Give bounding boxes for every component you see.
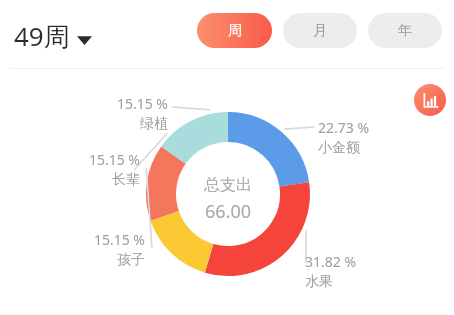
staticText: 绿植 <box>78 115 168 133</box>
staticText: 孩子 <box>55 251 145 269</box>
staticText: 水果 <box>305 273 415 291</box>
button[interactable]: 年 <box>368 13 442 48</box>
staticText: 小金额 <box>318 139 428 157</box>
button[interactable]: 周 <box>197 13 272 48</box>
staticText: 月 <box>313 22 327 40</box>
staticText: 年 <box>398 22 412 40</box>
staticText: 15.15 % <box>50 150 140 169</box>
staticText: 15.15 % <box>78 94 168 113</box>
staticText: 31.82 % <box>305 252 415 271</box>
staticText: 长辈 <box>50 171 140 189</box>
button[interactable]: 月 <box>283 13 357 48</box>
button[interactable]: Chart view <box>414 84 446 116</box>
button[interactable]: 49周 <box>10 14 96 58</box>
staticText: 22.73 % <box>318 118 428 137</box>
staticText: 49周 <box>14 18 70 54</box>
staticText: 66.00 <box>205 199 252 224</box>
staticText: 周 <box>228 22 242 40</box>
staticText: 总支出 <box>204 175 252 195</box>
staticText: 15.15 % <box>55 230 145 249</box>
